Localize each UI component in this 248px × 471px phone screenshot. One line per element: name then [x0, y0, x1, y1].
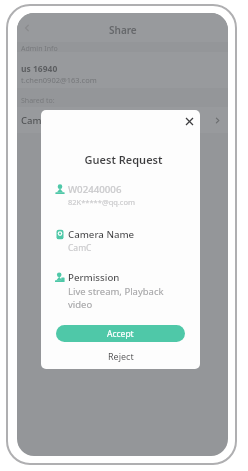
staticText: Shared to: — [21, 96, 55, 106]
staticText: Share — [109, 23, 137, 37]
staticText: Accept — [107, 328, 134, 340]
staticText: Camera Name — [68, 228, 135, 241]
button[interactable]: Close — [181, 113, 198, 130]
button[interactable]: Accept — [56, 325, 185, 342]
staticText: us 16940 — [21, 63, 58, 75]
staticText: Guest Request — [44, 152, 200, 167]
staticText: t.chen0902@163.com — [21, 75, 97, 85]
staticText: 82K*****@qq.com — [68, 197, 136, 207]
button[interactable]: Camera — [17, 107, 228, 133]
staticText: Camera — [21, 114, 57, 127]
staticText: CamC — [68, 242, 92, 254]
staticText: Permission — [68, 271, 120, 284]
staticText: Live stream, Playback video — [68, 285, 169, 311]
button[interactable]: Reject — [41, 348, 200, 364]
staticText: W02440006 — [68, 183, 122, 196]
button[interactable]: Back — [18, 19, 35, 36]
staticText: Reject — [108, 350, 134, 362]
staticText: Admin Info — [21, 44, 58, 54]
